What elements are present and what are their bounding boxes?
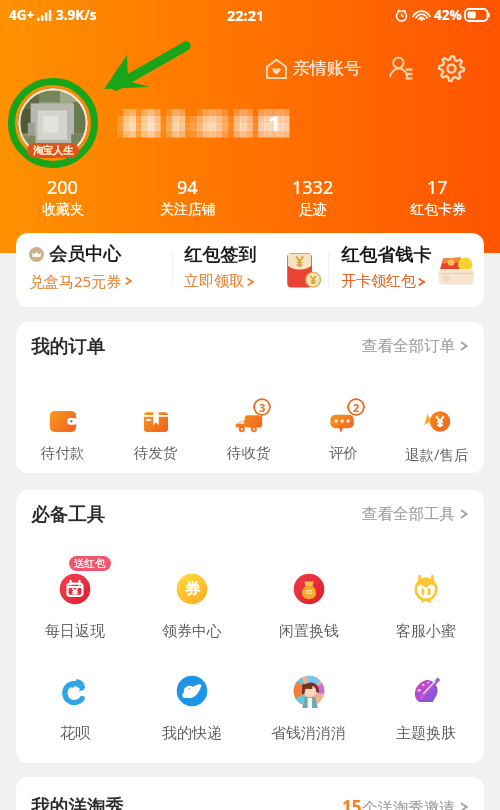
button[interactable]: 17	[375, 175, 500, 221]
staticText: 200	[47, 175, 78, 200]
staticText: 闲置换钱	[279, 622, 339, 641]
staticText: 省钱消消消	[271, 724, 346, 743]
staticText: 开卡领红包	[341, 272, 416, 291]
staticText: 15	[342, 795, 362, 810]
staticText: 3	[259, 400, 266, 415]
staticText: 足迹	[299, 201, 327, 219]
staticText: 主题换肤	[396, 724, 456, 743]
staticText: 领券中心	[162, 622, 222, 641]
staticText: 42%	[434, 6, 462, 24]
button[interactable]: 15	[342, 789, 470, 810]
staticText: 个洋淘秀邀请	[362, 798, 455, 810]
staticText: 亲情账号	[293, 58, 361, 79]
button[interactable]: 亲情账号	[262, 55, 365, 82]
staticText: 1332	[292, 175, 334, 200]
button[interactable]: 我的快递	[133, 673, 250, 743]
button[interactable]: 省钱消消消	[250, 673, 367, 743]
button[interactable]: Contacts	[383, 50, 419, 86]
staticText: 17	[427, 175, 448, 200]
button[interactable]: 花呗	[16, 673, 133, 743]
staticText: 94	[177, 175, 198, 200]
button[interactable]: 待发货	[109, 406, 202, 462]
staticText: 红包省钱卡	[341, 244, 431, 267]
staticText: 退款/售后	[405, 444, 469, 464]
button[interactable]: 200	[0, 175, 125, 221]
staticText: 待付款	[41, 444, 85, 462]
staticText: 红包签到	[184, 244, 256, 267]
button[interactable]: Settings	[433, 50, 469, 86]
staticText: 关注店铺	[160, 201, 216, 219]
button[interactable]: 券	[133, 571, 250, 641]
staticText: 淘宝人生	[33, 144, 73, 157]
staticText: 22:21	[227, 5, 265, 25]
button[interactable]: 退款/售后	[390, 406, 484, 464]
staticText: 查看全部订单	[362, 336, 455, 356]
button[interactable]: 待付款	[16, 406, 109, 462]
staticText: 每日返现	[45, 622, 105, 641]
staticText: 评价	[329, 444, 358, 462]
button[interactable]: 送红包	[16, 571, 133, 641]
button[interactable]: 主题换肤	[367, 673, 484, 743]
staticText: 待收货	[227, 444, 271, 462]
staticText: 我的订单	[31, 335, 105, 358]
button[interactable]: 会员中心	[16, 233, 172, 307]
button[interactable]: 闲置换钱	[250, 571, 367, 641]
staticText: 立即领取	[184, 272, 244, 291]
staticText: 1	[268, 107, 281, 137]
staticText: 必备工具	[31, 503, 105, 526]
staticText: 我的洋淘秀	[31, 795, 124, 810]
staticText: 2	[353, 400, 360, 415]
staticText: 收藏夹	[42, 201, 84, 219]
staticText: 会员中心	[49, 243, 121, 266]
staticText: 查看全部工具	[362, 504, 455, 524]
staticText: 送红包	[74, 557, 106, 570]
staticText: 券	[185, 580, 200, 599]
button[interactable]: 3	[202, 406, 296, 462]
button[interactable]: 红包省钱卡	[329, 233, 484, 307]
button[interactable]: 查看全部订单	[362, 330, 470, 362]
staticText: 红包卡券	[410, 201, 466, 219]
button[interactable]: Avatar	[18, 88, 88, 158]
button[interactable]: 查看全部工具	[362, 498, 470, 530]
staticText: 4G+	[9, 6, 35, 24]
staticText: 待发货	[134, 444, 178, 462]
staticText: 我的快递	[162, 724, 222, 743]
staticText: 3.9K/s	[56, 6, 97, 24]
staticText: 兑盒马25元券	[29, 271, 122, 291]
button[interactable]: 2	[296, 406, 390, 462]
button[interactable]: 客服小蜜	[367, 571, 484, 641]
button[interactable]: 1332	[250, 175, 375, 221]
staticText: 客服小蜜	[396, 622, 456, 641]
staticText: 花呗	[60, 724, 90, 743]
button[interactable]: 红包签到	[173, 233, 328, 307]
button[interactable]: 94	[125, 175, 250, 221]
